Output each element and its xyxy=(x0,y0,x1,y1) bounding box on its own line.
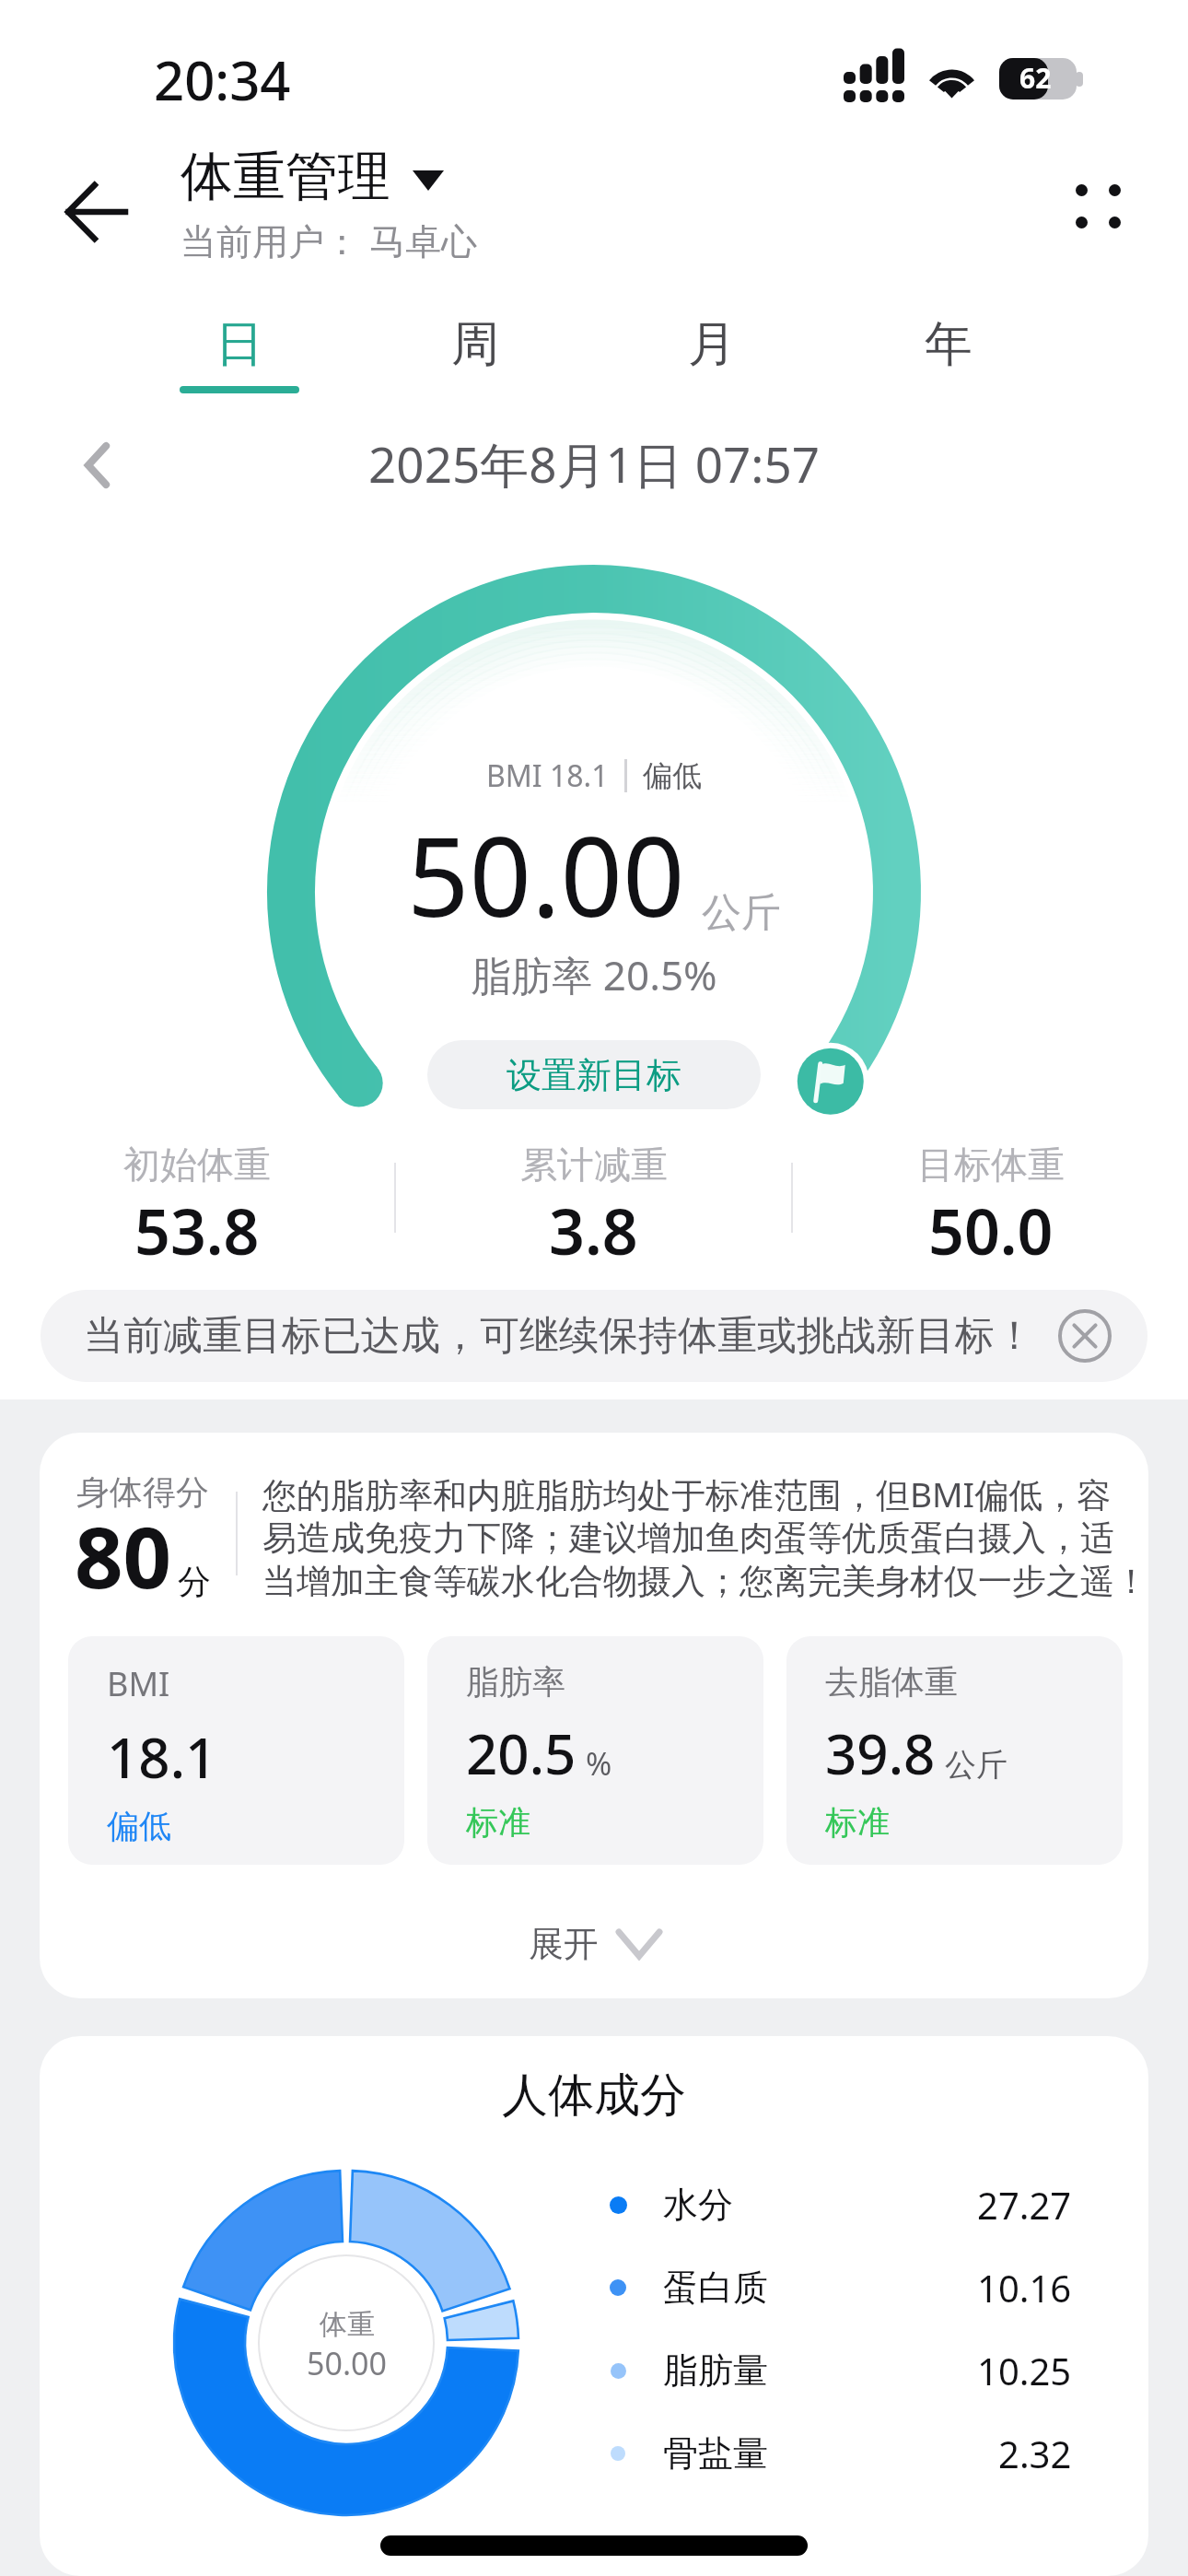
button[interactable]: 目标体重 xyxy=(793,1124,1188,1271)
button[interactable]: 脂肪率 xyxy=(427,1636,763,1865)
button[interactable]: 初始体重 xyxy=(0,1124,394,1271)
button[interactable]: 水分 xyxy=(595,2163,1111,2246)
staticText: 当前减重目标已达成，可继续保持体重或挑战新目标！ xyxy=(84,1311,1034,1361)
staticText: 脂肪量 xyxy=(663,2348,768,2393)
button[interactable]: Dismiss xyxy=(1054,1305,1116,1367)
staticText: 10.16 xyxy=(977,2263,1072,2313)
staticText: 水分 xyxy=(663,2183,733,2227)
button[interactable]: More options xyxy=(1047,155,1148,256)
staticText: 设置新目标 xyxy=(507,1053,681,1097)
staticText: 标准 xyxy=(466,1802,530,1843)
button[interactable]: 累计减重 xyxy=(396,1124,791,1271)
staticText: 蛋白质 xyxy=(663,2266,768,2310)
staticText: 分 xyxy=(178,1561,211,1602)
button[interactable]: 当前减重目标已达成，可继续保持体重或挑战新目标！ xyxy=(41,1290,1147,1382)
staticText: 体重管理 xyxy=(181,144,390,210)
button[interactable]: Back xyxy=(41,150,151,261)
button[interactable]: 展开 xyxy=(40,1898,1148,1990)
staticText: 20.5 xyxy=(466,1715,577,1791)
staticText: 脂肪率 xyxy=(466,1661,565,1703)
staticText: 年 xyxy=(925,314,973,375)
staticText: 公斤 xyxy=(702,888,781,938)
staticText: 目标体重 xyxy=(917,1142,1065,1188)
staticText: 50.0 xyxy=(928,1188,1054,1271)
staticText: 10.25 xyxy=(977,2346,1072,2395)
staticText: % xyxy=(586,1742,612,1785)
staticText: 脂肪率 20.5% xyxy=(0,947,1188,1002)
staticText: 2.32 xyxy=(998,2429,1072,2478)
staticText: 20:34 xyxy=(154,43,291,116)
button[interactable]: 月 xyxy=(593,281,830,405)
staticText: 39.8 xyxy=(825,1715,936,1791)
staticText: 3.8 xyxy=(549,1188,638,1271)
button[interactable]: Body composition chart xyxy=(174,2171,518,2515)
staticText: 50.00 xyxy=(307,2342,387,2384)
button[interactable]: 周 xyxy=(357,281,593,405)
staticText: BMI xyxy=(107,1661,170,1706)
button[interactable]: 年 xyxy=(830,281,1066,405)
button[interactable]: Previous day xyxy=(57,419,136,498)
button[interactable]: BMI xyxy=(68,1636,404,1865)
button[interactable]: 日 xyxy=(122,281,357,405)
button[interactable]: 体重管理 xyxy=(181,144,478,264)
staticText: 2025年8月1日 07:57 xyxy=(368,430,821,497)
staticText: 骨盐量 xyxy=(663,2431,768,2476)
staticText: 去脂体重 xyxy=(825,1661,958,1703)
button[interactable]: 身体得分 xyxy=(45,1471,240,1628)
staticText: 50.00 xyxy=(407,801,685,949)
staticText: 累计减重 xyxy=(520,1142,668,1188)
staticText: 您的脂肪率和内脏脂肪均处于标准范围，但BMI偏低，容 易造成免疫力下降；建议增加… xyxy=(262,1470,1148,1603)
staticText: 当前用户： 马卓心 xyxy=(181,216,478,264)
button[interactable]: 脂肪量 xyxy=(595,2329,1111,2412)
staticText: 身体得分 xyxy=(76,1471,209,1513)
button[interactable]: 骨盐量 xyxy=(595,2412,1111,2495)
staticText: 偏低 xyxy=(107,1806,171,1846)
staticText: 62 xyxy=(1019,59,1052,97)
staticText: 80 xyxy=(75,1498,172,1613)
staticText: 18.1 xyxy=(107,1719,217,1795)
staticText: 展开 xyxy=(529,1922,599,1966)
staticText: 27.27 xyxy=(977,2180,1072,2230)
staticText: 人体成分 xyxy=(40,2067,1148,2125)
staticText: 公斤 xyxy=(945,1745,1007,1785)
staticText: 标准 xyxy=(825,1802,890,1843)
staticText: 偏低 xyxy=(643,757,702,794)
staticText: 周 xyxy=(451,314,499,375)
staticText: 日 xyxy=(215,314,263,375)
button[interactable]: 蛋白质 xyxy=(595,2246,1111,2329)
staticText: 体重 xyxy=(320,2307,375,2342)
button[interactable]: 去脂体重 xyxy=(786,1636,1123,1865)
staticText: 53.8 xyxy=(134,1188,260,1271)
staticText: BMI 18.1 xyxy=(486,755,609,796)
staticText: 月 xyxy=(688,314,736,375)
button[interactable]: 设置新目标 xyxy=(427,1040,761,1109)
staticText: 初始体重 xyxy=(123,1142,271,1188)
